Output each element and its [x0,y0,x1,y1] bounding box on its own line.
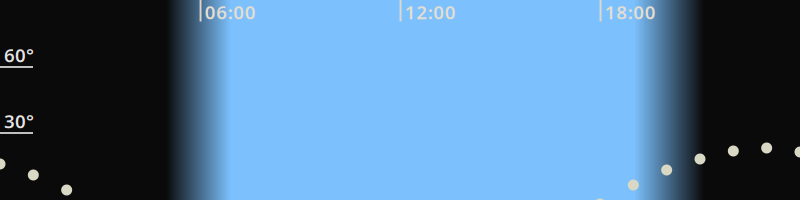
group: Moon altitude chart [0,0,800,200]
staticText: 06:00 [205,0,256,24]
staticText: 18:00 [605,0,656,24]
staticText: 12:00 [405,0,456,24]
staticText: 60° [4,43,34,67]
staticText: 30° [4,109,34,133]
